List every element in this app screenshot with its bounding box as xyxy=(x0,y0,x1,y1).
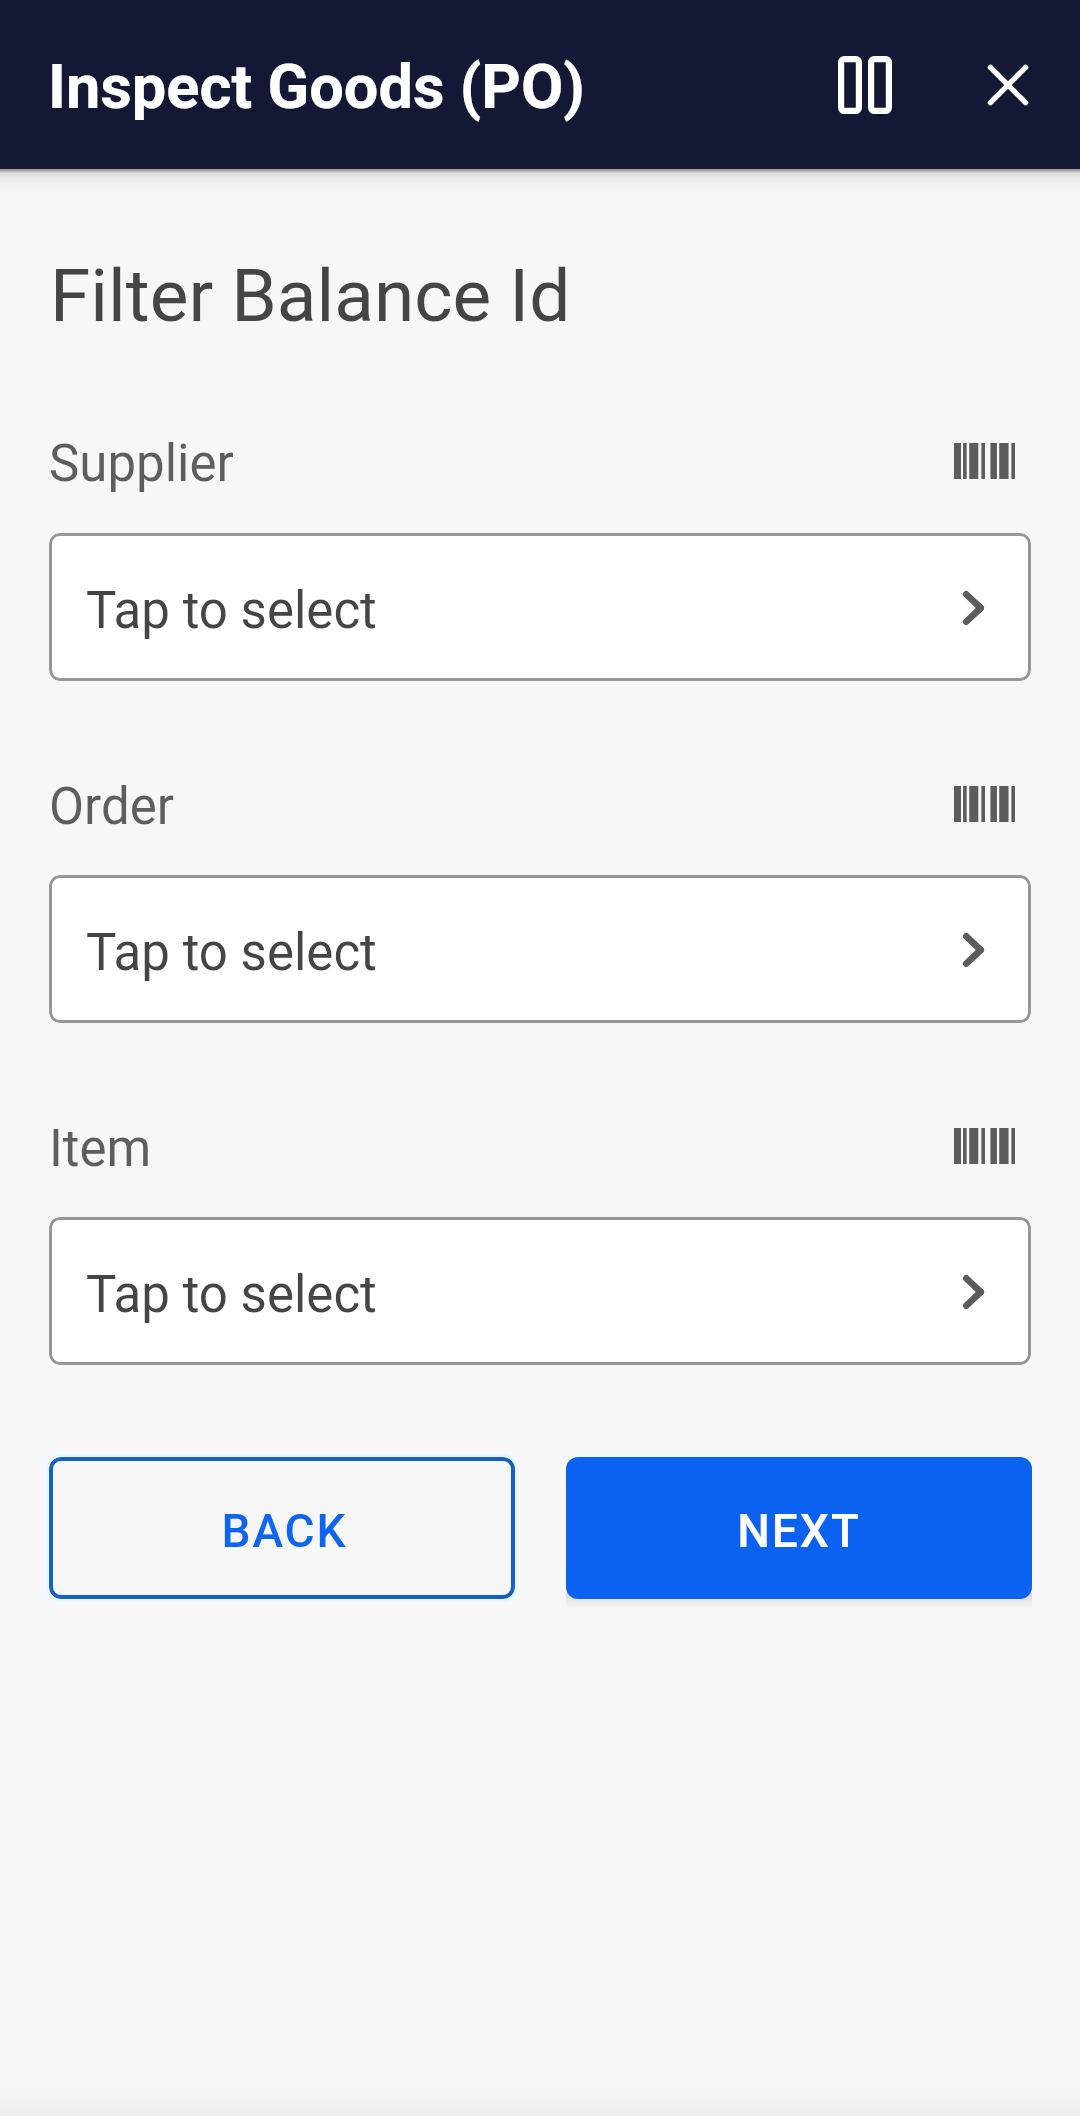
staticText: BACK xyxy=(221,1504,348,1558)
button[interactable]: NEXT xyxy=(566,1457,1032,1599)
staticText: NEXT xyxy=(737,1504,861,1558)
staticText: Order xyxy=(49,777,174,837)
staticText: Supplier xyxy=(49,434,234,494)
staticText: Tap to select xyxy=(86,581,377,641)
staticText: Filter Balance Id xyxy=(50,253,571,339)
button[interactable]: Split screen xyxy=(818,33,912,136)
button[interactable]: Close xyxy=(962,39,1054,131)
staticText: Inspect Goods (PO) xyxy=(48,51,585,123)
button[interactable]: Scan barcode xyxy=(924,763,1044,845)
staticText: Tap to select xyxy=(86,923,377,983)
button[interactable]: Tap to select xyxy=(49,875,1031,1023)
staticText: Tap to select xyxy=(86,1265,377,1325)
button[interactable]: BACK xyxy=(49,1457,515,1599)
button[interactable]: Tap to select xyxy=(49,1217,1031,1365)
button[interactable]: Tap to select xyxy=(49,533,1031,681)
button[interactable]: Scan barcode xyxy=(924,420,1044,502)
button[interactable]: Scan barcode xyxy=(924,1105,1044,1187)
staticText: Item xyxy=(49,1119,152,1179)
